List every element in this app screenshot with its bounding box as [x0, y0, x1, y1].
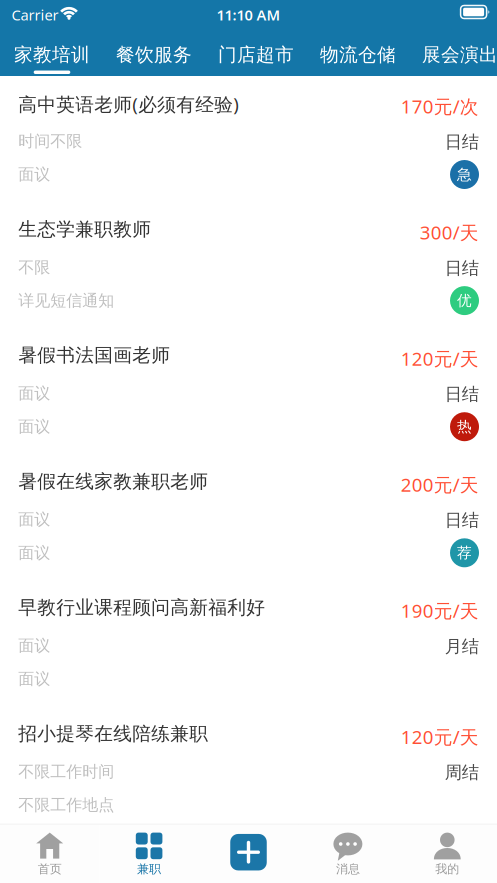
staticText: 170元/次 [401, 94, 479, 119]
staticText: 面议 [18, 165, 50, 184]
button[interactable]: 首页 [0, 825, 99, 883]
staticText: 暑假书法国画老师 [18, 344, 170, 367]
staticText: 门店超市 [218, 43, 294, 66]
button[interactable]: 门店超市 [205, 31, 307, 76]
staticText: 详见短信通知 [18, 291, 114, 310]
staticText: 不限工作地点 [18, 795, 114, 815]
staticText: 热 [457, 418, 472, 436]
button[interactable]: 展会演出 [409, 31, 497, 76]
staticText: 高中英语老师(必须有经验) [18, 92, 239, 116]
staticText: 招小提琴在线陪练兼职 [18, 722, 208, 745]
staticText: 日结 [445, 510, 479, 531]
staticText: 面议 [18, 510, 50, 529]
staticText: 急 [457, 165, 472, 183]
staticText: 日结 [445, 131, 479, 153]
staticText: 餐饮服务 [116, 43, 192, 66]
staticText: 时间不限 [18, 131, 82, 151]
staticText: 家教培训 [14, 43, 90, 66]
staticText: 120元/天 [401, 346, 479, 371]
button[interactable]: 我的 [398, 825, 497, 883]
staticText: 日结 [445, 384, 479, 405]
staticText: 生态学兼职教师 [18, 218, 151, 241]
staticText: 物流仓储 [320, 43, 396, 66]
button[interactable]: 高中英语老师(必须有经验) [0, 81, 497, 207]
staticText: 120元/天 [401, 724, 479, 749]
staticText: 日结 [445, 257, 479, 279]
button[interactable]: 生态学兼职教师 [0, 207, 497, 333]
staticText: 300/天 [420, 220, 479, 245]
staticText: 面议 [18, 417, 50, 437]
button[interactable]: 餐饮服务 [103, 31, 205, 76]
staticText: 展会演出 [422, 43, 497, 66]
staticText: 早教行业课程顾问高新福利好 [18, 596, 265, 619]
button[interactable]: 早教行业课程顾问高新福利好 [0, 586, 497, 712]
button[interactable]: 发布兼职 [199, 825, 298, 883]
staticText: 月结 [445, 636, 479, 657]
staticText: 面议 [18, 636, 50, 655]
staticText: 我的 [435, 862, 459, 876]
staticText: 不限工作时间 [18, 762, 114, 782]
staticText: 11:10 AM [216, 5, 280, 24]
button[interactable]: 物流仓储 [307, 31, 409, 76]
staticText: 不限 [18, 257, 50, 277]
staticText: 兼职 [137, 862, 161, 876]
staticText: 优 [457, 292, 472, 310]
staticText: 面议 [18, 543, 50, 563]
staticText: 荐 [457, 544, 472, 562]
button[interactable]: 兼职 [99, 825, 199, 883]
staticText: 周结 [445, 762, 479, 783]
staticText: 首页 [38, 862, 62, 876]
button[interactable]: 消息 [298, 825, 398, 883]
staticText: 面议 [18, 669, 50, 689]
staticText: 面议 [18, 384, 50, 403]
staticText: 200元/天 [401, 472, 479, 497]
staticText: 暑假在线家教兼职老师 [18, 470, 208, 493]
staticText: Carrier [11, 5, 58, 24]
button[interactable]: 招小提琴在线陪练兼职 [0, 712, 497, 838]
button[interactable]: 暑假在线家教兼职老师 [0, 459, 497, 586]
staticText: 消息 [336, 862, 360, 876]
button[interactable]: 家教培训 [1, 31, 103, 76]
button[interactable]: 暑假书法国画老师 [0, 333, 497, 459]
staticText: 190元/天 [401, 598, 479, 623]
